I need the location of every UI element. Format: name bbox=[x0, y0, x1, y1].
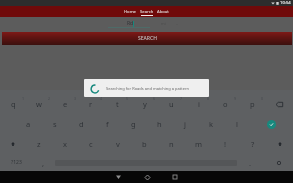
button[interactable]: a bbox=[15, 114, 42, 134]
button[interactable]: d bbox=[68, 114, 94, 134]
button[interactable]: s bbox=[42, 114, 68, 134]
button[interactable]: r bbox=[78, 94, 104, 114]
button[interactable]: Shift bbox=[266, 134, 293, 154]
staticText: l bbox=[236, 119, 238, 129]
staticText: t bbox=[116, 99, 119, 109]
button[interactable]: q bbox=[0, 94, 26, 114]
button[interactable]: About bbox=[155, 6, 171, 17]
button[interactable]: y bbox=[131, 94, 158, 114]
staticText: m bbox=[195, 139, 203, 149]
staticText: Searching for Roads and matching a patte… bbox=[106, 86, 190, 91]
staticText: 4 bbox=[100, 96, 103, 101]
staticText: 2 bbox=[48, 96, 51, 101]
staticText: n bbox=[169, 139, 174, 149]
button[interactable]: v bbox=[104, 134, 131, 154]
staticText: 0 bbox=[261, 96, 264, 101]
staticText: 5 bbox=[126, 96, 129, 101]
button[interactable]: m bbox=[185, 134, 212, 154]
staticText: ! bbox=[224, 139, 227, 149]
staticText: SEARCH bbox=[138, 35, 157, 42]
button[interactable]: Rd bbox=[108, 18, 150, 27]
button[interactable]: u bbox=[158, 94, 185, 114]
button[interactable]: Backspace bbox=[266, 94, 293, 114]
staticText: . bbox=[249, 158, 252, 168]
staticText: r bbox=[89, 99, 93, 109]
staticText: 1 bbox=[22, 96, 25, 101]
staticText: g bbox=[131, 119, 136, 129]
staticText: k bbox=[209, 119, 214, 129]
button[interactable]: ?123 bbox=[0, 154, 32, 171]
staticText: About bbox=[157, 9, 169, 15]
staticText: w bbox=[36, 99, 42, 109]
staticText: x bbox=[63, 139, 67, 149]
staticText: Search bbox=[140, 9, 154, 15]
button[interactable]: b bbox=[131, 134, 158, 154]
staticText: b bbox=[142, 139, 147, 149]
button[interactable]: n bbox=[158, 134, 185, 154]
button[interactable] bbox=[55, 154, 237, 171]
button[interactable]: f bbox=[94, 114, 120, 134]
staticText: f bbox=[106, 119, 109, 129]
staticText: o bbox=[223, 99, 228, 109]
staticText: v bbox=[116, 139, 120, 149]
staticText: z bbox=[37, 139, 41, 149]
staticText: Rd bbox=[127, 20, 134, 27]
button[interactable]: Emoji bbox=[264, 154, 293, 171]
staticText: Home bbox=[124, 9, 136, 15]
button[interactable]: z bbox=[26, 134, 52, 154]
staticText: c bbox=[89, 139, 93, 149]
staticText: j bbox=[184, 119, 186, 129]
staticText: d bbox=[79, 119, 84, 129]
button[interactable]: Shift bbox=[0, 134, 26, 154]
button[interactable]: SEARCH bbox=[2, 32, 292, 45]
button[interactable]: t bbox=[104, 94, 131, 114]
button[interactable]: k bbox=[198, 114, 224, 134]
button[interactable]: i bbox=[185, 94, 212, 114]
staticText: i bbox=[198, 99, 200, 109]
staticText: p bbox=[250, 99, 255, 109]
button[interactable]: e bbox=[52, 94, 78, 114]
button[interactable]: w bbox=[26, 94, 52, 114]
button[interactable]: g bbox=[120, 114, 146, 134]
staticText: e bbox=[63, 99, 68, 109]
staticText: h bbox=[157, 119, 162, 129]
button[interactable]: x bbox=[52, 134, 78, 154]
staticText: u bbox=[169, 99, 174, 109]
button[interactable]: p bbox=[239, 94, 266, 114]
staticText: ? bbox=[251, 139, 255, 149]
button[interactable]: Home bbox=[122, 6, 138, 17]
button[interactable]: Recents bbox=[165, 171, 185, 183]
staticText: 6 bbox=[153, 96, 156, 101]
staticText: q bbox=[11, 99, 16, 109]
staticText: 10:54 bbox=[280, 0, 291, 6]
staticText: 8 bbox=[207, 96, 210, 101]
staticText: a bbox=[26, 119, 31, 129]
button[interactable]: Search bbox=[138, 6, 155, 17]
button[interactable]: o bbox=[212, 94, 239, 114]
staticText: ?123 bbox=[11, 159, 22, 166]
staticText: , bbox=[42, 158, 45, 168]
staticText: 3 bbox=[74, 96, 77, 101]
button[interactable]: Home bbox=[137, 171, 157, 183]
button[interactable]: Search bbox=[250, 114, 293, 134]
staticText: 9 bbox=[234, 96, 237, 101]
staticText: 7 bbox=[180, 96, 183, 101]
staticText: y bbox=[143, 99, 147, 109]
staticText: s bbox=[53, 119, 57, 129]
button[interactable]: h bbox=[146, 114, 172, 134]
button[interactable]: Back bbox=[108, 171, 128, 183]
